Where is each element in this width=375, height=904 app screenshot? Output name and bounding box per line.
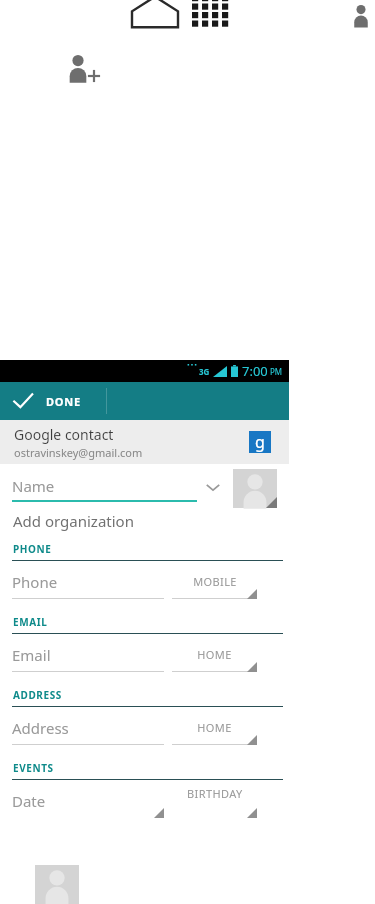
staticText: 7:00 xyxy=(242,362,268,380)
staticText: Name xyxy=(12,476,55,496)
button[interactable]: BIRTHDAY xyxy=(172,786,257,818)
staticText: ostravinskey@gmail.com xyxy=(14,445,143,460)
button[interactable]: Google contact xyxy=(0,420,289,464)
staticText: DONE xyxy=(46,394,82,409)
staticText: Address xyxy=(12,718,69,738)
staticText: Date xyxy=(12,791,46,811)
button[interactable]: Date xyxy=(12,784,164,818)
staticText: g xyxy=(255,431,265,453)
staticText: EMAIL xyxy=(13,615,48,629)
staticText: EVENTS xyxy=(13,761,54,775)
staticText: Add organization xyxy=(13,511,134,531)
staticText: Phone xyxy=(12,572,58,592)
button[interactable]: Email xyxy=(12,638,164,672)
button[interactable]: Home xyxy=(130,0,180,30)
other: Profile xyxy=(348,1,374,27)
staticText: Google contact xyxy=(14,425,114,444)
button[interactable]: Name xyxy=(12,470,197,502)
staticText: HOME xyxy=(197,720,232,735)
button[interactable]: DONE xyxy=(0,382,289,420)
button[interactable]: Add organization xyxy=(0,508,289,534)
button[interactable]: Add contact xyxy=(62,50,108,88)
button[interactable]: Add photo xyxy=(233,469,277,508)
button[interactable]: HOME xyxy=(172,640,257,672)
button[interactable]: MOBILE xyxy=(172,567,257,599)
staticText: MOBILE xyxy=(193,574,237,589)
staticText: 3G xyxy=(199,366,210,377)
staticText: PM xyxy=(270,366,283,377)
button[interactable]: HOME xyxy=(172,713,257,745)
staticText: ADDRESS xyxy=(13,688,62,702)
button[interactable]: All apps xyxy=(192,0,232,29)
staticText: BIRTHDAY xyxy=(187,786,243,801)
button[interactable]: Phone xyxy=(12,565,164,599)
staticText: PHONE xyxy=(13,542,52,556)
staticText: HOME xyxy=(197,647,232,662)
button[interactable]: Expand name xyxy=(200,474,226,500)
button[interactable]: Address xyxy=(12,711,164,745)
staticText: Email xyxy=(12,645,51,665)
